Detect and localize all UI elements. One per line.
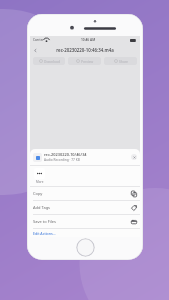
staticText: Add Tags	[33, 205, 131, 210]
staticText: Save to Files	[33, 219, 131, 224]
button[interactable]: Home	[76, 238, 95, 257]
staticText: Share	[119, 59, 128, 63]
staticText: More	[36, 180, 44, 184]
staticText: Preview	[81, 59, 94, 63]
button[interactable]: rec-20230220-10/46/34	[30, 149, 140, 165]
button[interactable]: Save to Files	[30, 215, 140, 228]
button[interactable]: Add Tags	[30, 201, 140, 214]
button[interactable]: Download	[33, 57, 65, 65]
button[interactable]: Share	[104, 57, 137, 65]
button[interactable]: Back	[32, 47, 39, 54]
staticText: Copy	[33, 191, 131, 196]
staticText: rec-20230220-10/46/34	[44, 152, 87, 157]
staticText: Download	[44, 59, 60, 63]
button[interactable]: Edit Actions…	[30, 229, 140, 237]
staticText: rec-20230220-10:46:34.m4a	[56, 47, 114, 53]
staticText: Carrier	[33, 38, 44, 42]
button[interactable]: Preview	[68, 57, 101, 65]
button[interactable]: Copy	[30, 187, 140, 200]
staticText: Audio Recording · 77 KB	[44, 158, 80, 162]
staticText: 10:46 AM	[81, 38, 96, 42]
button[interactable]: More	[34, 168, 45, 179]
button[interactable]: Close	[131, 154, 137, 160]
staticText: Edit Actions…	[33, 231, 56, 236]
